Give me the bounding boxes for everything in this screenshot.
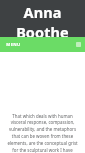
staticText: MENU — [6, 42, 21, 48]
button[interactable]: Anna Boothe — [0, 0, 85, 37]
staticText: Anna Boothe — [0, 2, 85, 37]
button[interactable]: MENU — [0, 39, 25, 51]
button[interactable]: Open navigation menu — [72, 39, 85, 50]
staticText: That which deals with human visceral res… — [6, 113, 79, 153]
